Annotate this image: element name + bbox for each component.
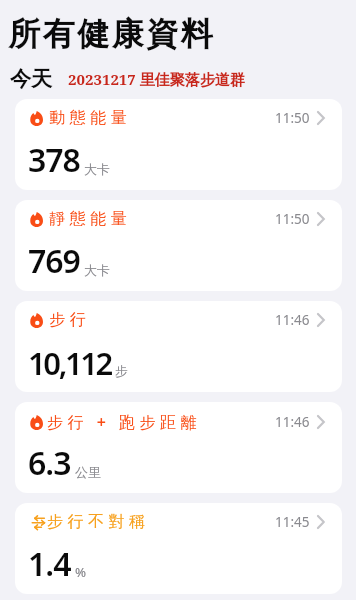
staticText: 大卡: [84, 161, 110, 177]
staticText: 步行: [47, 310, 88, 330]
staticText: 步: [115, 363, 128, 379]
button[interactable]: 動態能量: [15, 99, 342, 190]
staticText: 1.4: [28, 542, 71, 586]
staticText: 20231217 里佳聚落步道群: [68, 69, 245, 89]
staticText: 6.3: [28, 441, 71, 485]
staticText: 今天: [10, 66, 52, 92]
staticText: 步行 + 跑步距離: [47, 411, 201, 433]
staticText: 動態能量: [47, 108, 129, 128]
staticText: 11:46: [275, 311, 310, 329]
staticText: 11:46: [275, 413, 310, 431]
staticText: %: [75, 563, 87, 581]
staticText: 11:50: [275, 210, 310, 228]
staticText: 所有健康資料: [7, 14, 214, 54]
staticText: 11:50: [275, 109, 310, 127]
staticText: 靜態能量: [47, 209, 129, 229]
staticText: 步行不對稱: [47, 512, 150, 532]
staticText: 公里: [75, 464, 101, 480]
staticText: 769: [28, 239, 80, 283]
staticText: 大卡: [84, 262, 110, 278]
staticText: 11:45: [275, 513, 310, 531]
staticText: 10,112: [28, 342, 111, 384]
staticText: 378: [28, 138, 80, 182]
button[interactable]: 步行: [15, 301, 342, 392]
button[interactable]: 步行 + 跑步距離: [15, 402, 342, 493]
button[interactable]: 靜態能量: [15, 200, 342, 291]
button[interactable]: 步行不對稱: [15, 503, 342, 594]
